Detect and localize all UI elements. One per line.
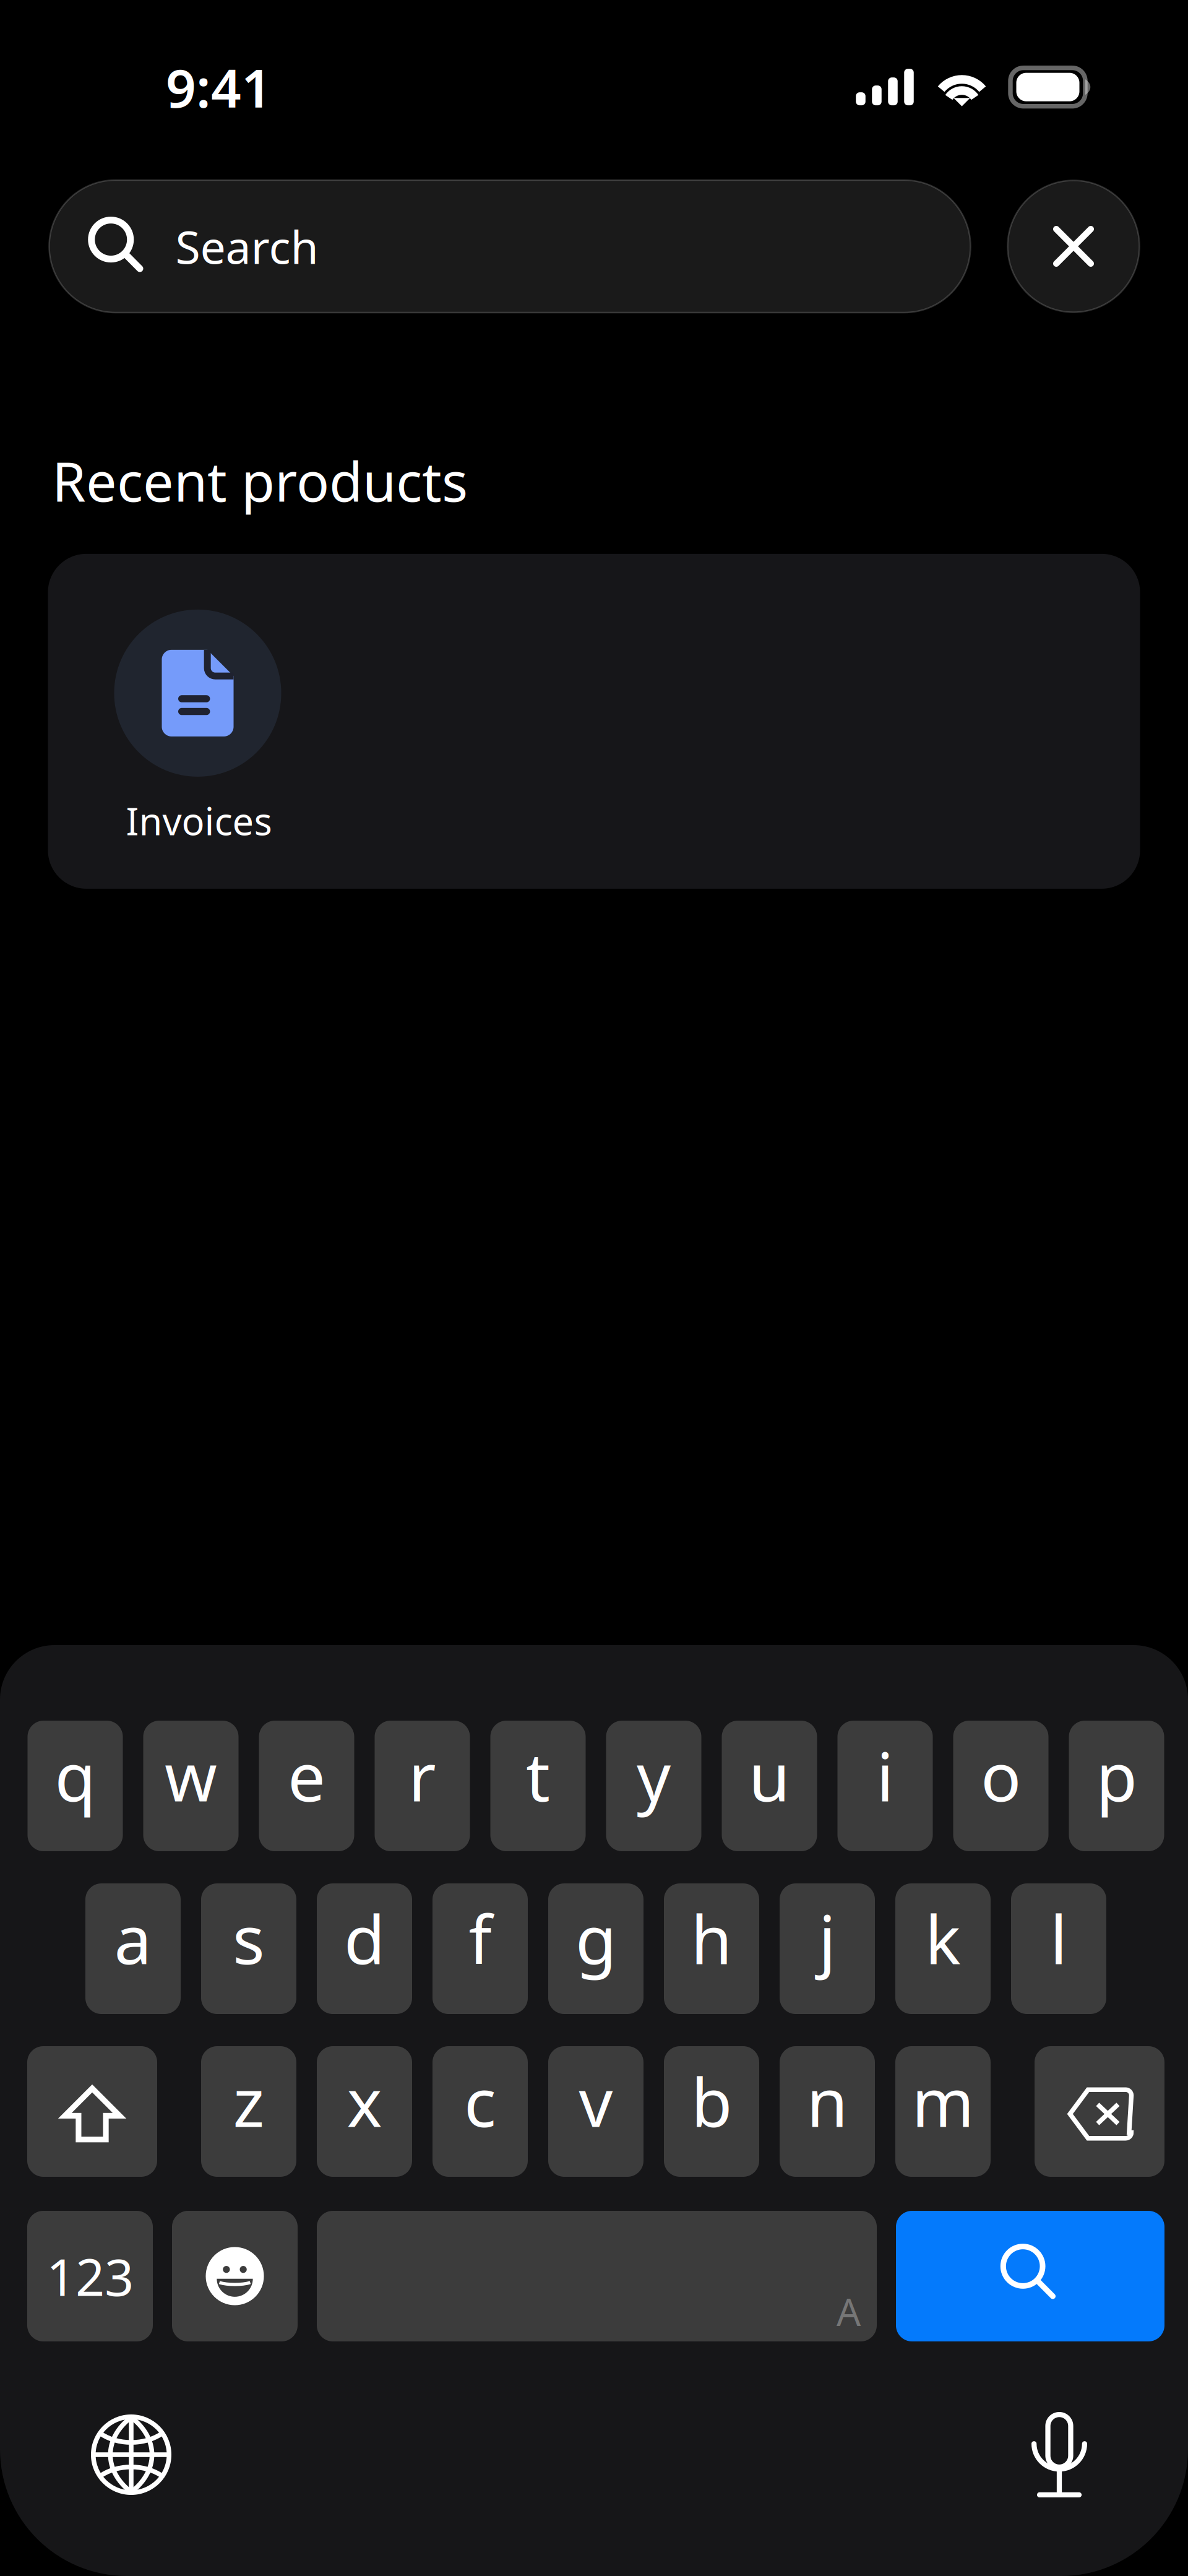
staticText: a — [114, 1894, 152, 1983]
button[interactable]: h — [664, 1883, 759, 2014]
staticText: b — [691, 2057, 732, 2145]
staticText: f — [469, 1894, 492, 1983]
button[interactable]: k — [895, 1883, 991, 2014]
button[interactable]: g — [548, 1883, 643, 2014]
staticText: s — [233, 1894, 265, 1983]
button[interactable]: i — [837, 1721, 933, 1851]
button[interactable]: Space — [317, 2211, 877, 2341]
staticText: o — [981, 1731, 1021, 1820]
button[interactable]: r — [375, 1721, 470, 1851]
button[interactable]: s — [201, 1883, 296, 2014]
button[interactable]: c — [433, 2046, 528, 2177]
staticText: j — [819, 1894, 836, 1983]
button[interactable]: o — [953, 1721, 1048, 1851]
button[interactable]: j — [780, 1883, 875, 2014]
button[interactable]: d — [317, 1883, 412, 2014]
staticText: Recent products — [52, 444, 468, 517]
button[interactable]: m — [895, 2046, 991, 2177]
staticText: g — [575, 1894, 616, 1983]
staticText: t — [526, 1731, 550, 1820]
staticText: i — [876, 1731, 894, 1820]
button[interactable]: f — [433, 1883, 528, 2014]
staticText: w — [165, 1731, 217, 1820]
staticText: x — [347, 2057, 382, 2145]
staticText: c — [464, 2057, 496, 2145]
staticText: d — [344, 1894, 385, 1983]
button[interactable]: q — [28, 1721, 123, 1851]
staticText: k — [925, 1894, 961, 1983]
button[interactable]: l — [1011, 1883, 1106, 2014]
staticText: l — [1050, 1894, 1067, 1983]
staticText: Search — [175, 216, 318, 276]
button[interactable]: Close search — [1008, 180, 1139, 312]
button[interactable]: Numbers — [27, 2211, 153, 2341]
button[interactable]: x — [317, 2046, 412, 2177]
button[interactable]: Dictate — [1001, 2408, 1118, 2501]
button[interactable]: w — [143, 1721, 239, 1851]
button[interactable]: y — [606, 1721, 701, 1851]
button[interactable]: Invoices — [48, 554, 1140, 889]
staticText: r — [408, 1731, 436, 1820]
button[interactable]: b — [664, 2046, 759, 2177]
button[interactable]: Search — [896, 2211, 1164, 2341]
staticText: p — [1096, 1731, 1137, 1820]
staticText: e — [288, 1731, 325, 1820]
staticText: 9:41 — [166, 52, 272, 122]
staticText: Invoices — [126, 795, 272, 846]
button[interactable]: z — [201, 2046, 296, 2177]
button[interactable]: Switch keyboard — [72, 2408, 190, 2501]
button[interactable]: e — [259, 1721, 354, 1851]
button[interactable]: t — [490, 1721, 586, 1851]
button[interactable]: a — [85, 1883, 181, 2014]
staticText: A — [837, 2286, 861, 2336]
staticText: m — [912, 2057, 974, 2145]
staticText: q — [55, 1731, 96, 1820]
staticText: z — [233, 2057, 265, 2145]
staticText: y — [637, 1731, 671, 1820]
button[interactable]: Emoji — [172, 2211, 298, 2341]
button[interactable]: n — [780, 2046, 875, 2177]
button[interactable]: p — [1069, 1721, 1164, 1851]
button[interactable]: Shift — [27, 2046, 157, 2177]
staticText: u — [749, 1731, 790, 1820]
button[interactable]: Search — [49, 180, 971, 313]
button[interactable]: u — [722, 1721, 817, 1851]
button[interactable]: Delete — [1035, 2046, 1164, 2177]
staticText: 123 — [46, 2242, 134, 2310]
staticText: v — [579, 2057, 613, 2145]
staticText: n — [807, 2057, 848, 2145]
button[interactable]: v — [548, 2046, 643, 2177]
staticText: h — [691, 1894, 732, 1983]
